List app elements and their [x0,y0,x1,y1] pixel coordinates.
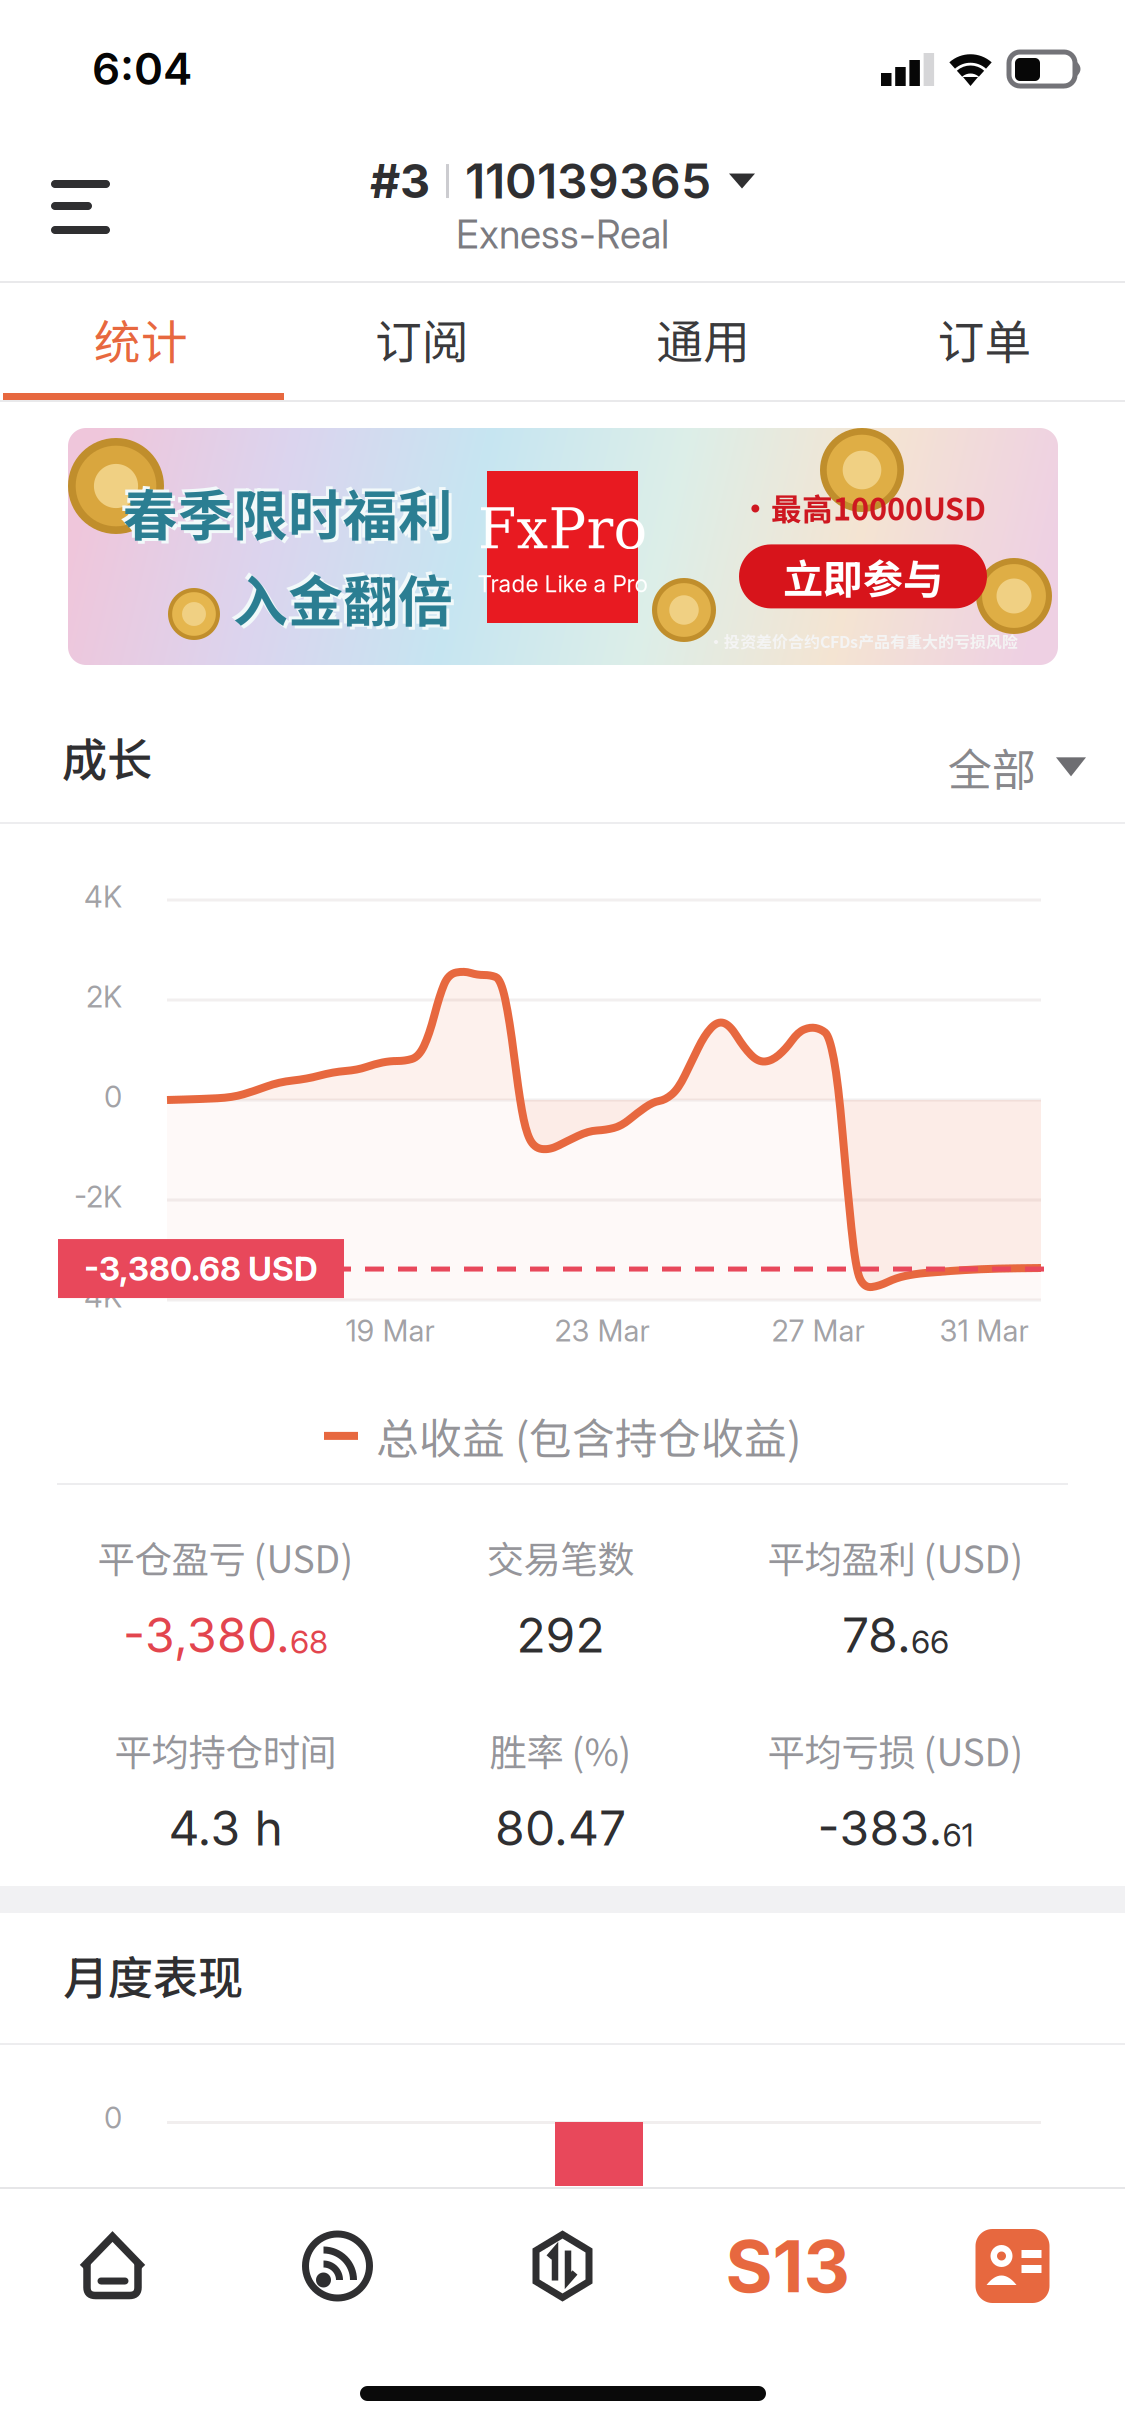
staticText: 19 Mar [345,1313,434,1348]
staticText: 27 Mar [771,1313,864,1348]
staticText: 68 [290,1622,328,1661]
staticText: 0 [104,2100,122,2135]
staticText: 110139365 [465,152,711,210]
staticText: S13 [725,2222,849,2309]
staticText: 入金翻倍 [230,555,450,634]
button[interactable]: Signals [225,2232,450,2300]
staticText: -4K [71,1279,122,1314]
staticText: 统计 [94,305,188,373]
staticText: 通用 [656,305,750,373]
staticText: 全部 [948,735,1036,799]
staticText: 春季限时福利 [123,472,453,551]
button[interactable]: Menu [0,0,124,248]
staticText: Trade Like a Pro [477,570,647,598]
staticText: Exness-Real [456,211,669,258]
staticText: 立即参与 [783,547,943,605]
button[interactable]: 订阅 [281,283,562,395]
button[interactable]: Home [0,2232,225,2299]
staticText: 成长 [62,724,152,790]
staticText: 平均持仓时间 [114,1723,336,1777]
button[interactable]: 统计 [0,283,281,395]
staticText: 292 [516,1606,604,1664]
staticText: 平均亏损 (USD) [767,1723,1023,1777]
staticText: 61 [942,1815,973,1854]
staticText: 23 Mar [554,1313,649,1348]
button[interactable]: Profile [900,2229,1125,2303]
button[interactable]: Trade [450,2230,675,2301]
staticText: -3,380. [123,1606,290,1664]
staticText: 春季限时福利 [120,469,450,548]
staticText: ·投资差价合约CFDs产品有重大的亏损风险 [708,629,1018,653]
staticText: 31 Mar [939,1313,1028,1348]
staticText: 入金翻倍 [236,561,456,640]
button[interactable]: 通用 [562,283,844,395]
staticText: 6:04 [92,42,192,95]
staticText: 4.3 h [168,1799,282,1857]
staticText: #3 [370,153,430,209]
staticText: 80.47 [495,1799,626,1857]
staticText: 订单 [937,305,1031,373]
staticText: FxPro [477,496,647,561]
staticText: 4K [84,879,122,914]
button[interactable]: S13 [675,2222,900,2309]
staticText: ·最高10000USD [740,485,986,529]
staticText: 2K [86,979,122,1014]
staticText: 66 [911,1622,949,1661]
staticText: 交易笔数 [486,1530,634,1584]
staticText: -383. [817,1799,942,1857]
staticText: -2K [74,1179,122,1214]
staticText: 订阅 [375,305,469,373]
staticText: 入金翻倍 [233,558,453,637]
staticText: 春季限时福利 [126,475,456,554]
button[interactable]: 全部 [0,0,1086,799]
button[interactable]: 订单 [844,283,1125,395]
staticText: 78. [842,1606,911,1664]
staticText: 总收益 (包含持仓收益) [376,1405,801,1467]
staticText: -3,380.68 USD [84,1248,318,1289]
button[interactable]: 春季限时福利 [68,428,1058,665]
staticText: 胜率 (%) [489,1723,631,1777]
staticText: 平均盈利 (USD) [767,1530,1023,1584]
staticText: 0 [104,1079,122,1114]
staticText: 平仓盈亏 (USD) [97,1530,353,1584]
staticText: 月度表现 [63,1942,243,2008]
button[interactable]: #3 [0,0,1125,258]
